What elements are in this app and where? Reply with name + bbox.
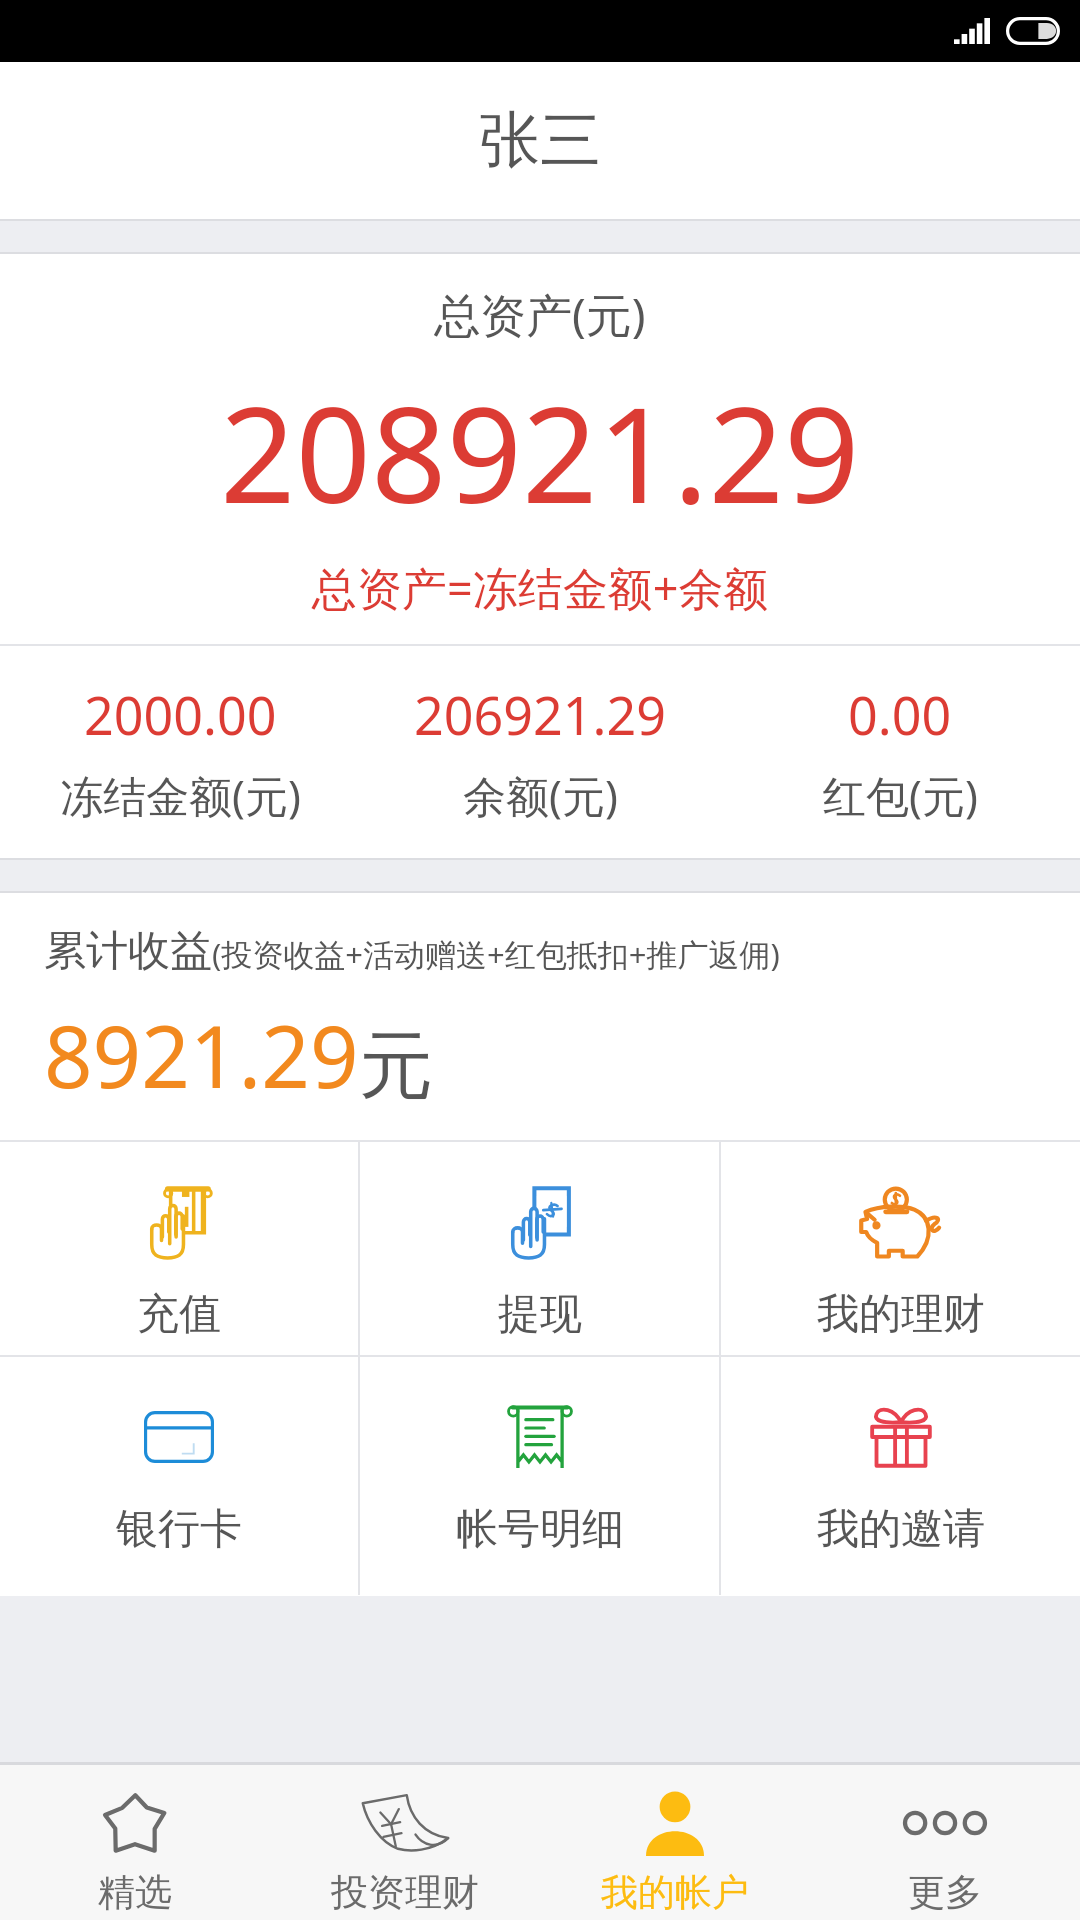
staticText: 余额(元) (463, 766, 618, 825)
button[interactable]: 更多 (810, 1765, 1080, 1920)
staticText: 冻结金额(元) (60, 766, 301, 825)
staticText: 投资理财 (331, 1869, 479, 1916)
staticText: 206921.29 (414, 679, 666, 750)
staticText: 208921.29 (220, 362, 860, 542)
button[interactable]: 我的帐户 (540, 1765, 810, 1920)
staticText: 充值 (137, 1288, 221, 1341)
staticText: 更多 (908, 1869, 982, 1916)
staticText: 银行卡 (116, 1503, 242, 1556)
button[interactable]: 总资产(元) (0, 254, 1080, 644)
button[interactable]: 充值 (0, 1142, 358, 1355)
staticText: 元 (359, 1020, 433, 1113)
staticText: 帐号明细 (456, 1503, 624, 1556)
button[interactable]: 投资理财 (270, 1765, 540, 1920)
button[interactable]: 我的理财 (721, 1142, 1080, 1355)
staticText: 累计收益 (44, 925, 212, 978)
staticText: 张三 (479, 102, 601, 179)
button[interactable]: 帐号明细 (360, 1357, 719, 1595)
staticText: 我的邀请 (817, 1503, 985, 1556)
button[interactable]: 206921.29 (360, 646, 720, 858)
button[interactable]: 银行卡 (0, 1357, 358, 1595)
button[interactable]: 我的邀请 (721, 1357, 1080, 1595)
staticText: 精选 (98, 1869, 172, 1916)
staticText: 8921.29 (44, 997, 359, 1113)
staticText: (投资收益+活动赠送+红包抵扣+推广返佣) (212, 933, 780, 975)
staticText: 我的理财 (817, 1288, 985, 1341)
staticText: 提现 (498, 1288, 582, 1341)
button[interactable]: 0.00 (720, 646, 1080, 858)
button[interactable]: 精选 (0, 1765, 270, 1920)
button[interactable]: 2000.00 (0, 646, 360, 858)
button[interactable]: 提现 (360, 1142, 719, 1355)
staticText: 2000.00 (84, 679, 277, 750)
staticText: 总资产(元) (434, 283, 646, 346)
staticText: 总资产=冻结金额+余额 (312, 557, 769, 618)
staticText: 我的帐户 (601, 1869, 749, 1916)
staticText: 0.00 (848, 679, 952, 750)
staticText: 红包(元) (823, 766, 978, 825)
